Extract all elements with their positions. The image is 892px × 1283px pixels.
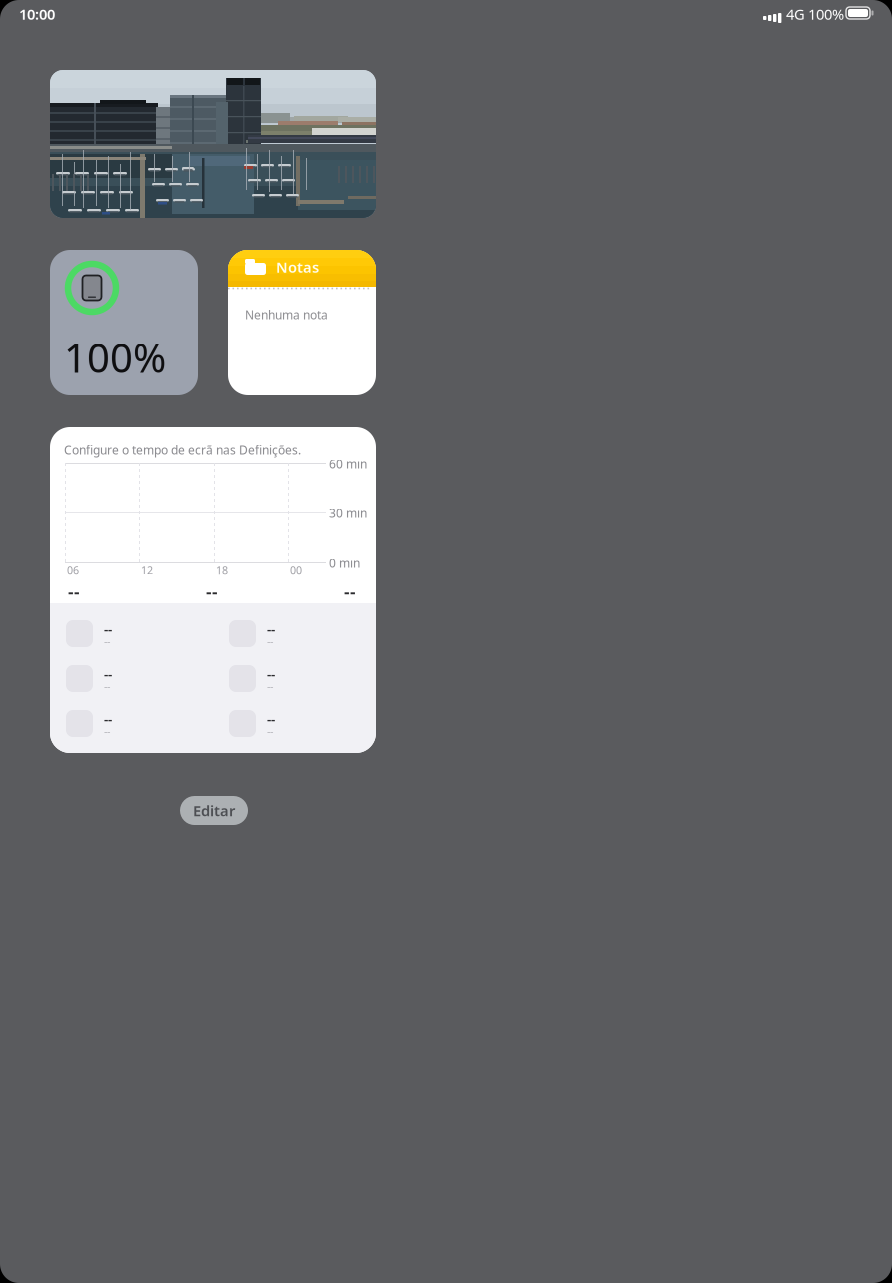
staticText: -- — [206, 580, 218, 603]
staticText: -- — [104, 634, 110, 648]
staticText: Editar — [193, 801, 235, 820]
staticText: -- — [104, 620, 112, 638]
staticText: -- — [104, 679, 110, 693]
staticText: -- — [68, 580, 80, 603]
staticText: 60 min — [329, 456, 367, 472]
staticText: 100% — [808, 4, 844, 24]
staticText: Notas — [276, 257, 319, 277]
staticText: -- — [267, 620, 275, 638]
staticText: -- — [267, 679, 273, 693]
staticText: -- — [104, 724, 110, 738]
staticText: 00 — [290, 563, 302, 577]
staticText: 18 — [216, 563, 228, 577]
staticText: -- — [267, 665, 275, 683]
staticText: -- — [267, 724, 273, 738]
staticText: 10:00 — [19, 4, 55, 24]
staticText: -- — [267, 634, 273, 648]
staticText: 06 — [67, 563, 79, 577]
staticText: -- — [344, 580, 356, 603]
staticText: 100% — [64, 330, 166, 383]
staticText: 0 min — [329, 555, 360, 571]
staticText: Nenhuma nota — [245, 307, 328, 323]
staticText: Configure o tempo de ecrã nas Definições… — [64, 442, 301, 458]
staticText: 12 — [141, 563, 153, 577]
staticText: -- — [267, 710, 275, 728]
button[interactable]: Editar — [180, 796, 248, 825]
staticText: -- — [104, 710, 112, 728]
staticText: 4G — [786, 4, 805, 24]
staticText: -- — [104, 665, 112, 683]
staticText: 30 min — [329, 505, 367, 521]
